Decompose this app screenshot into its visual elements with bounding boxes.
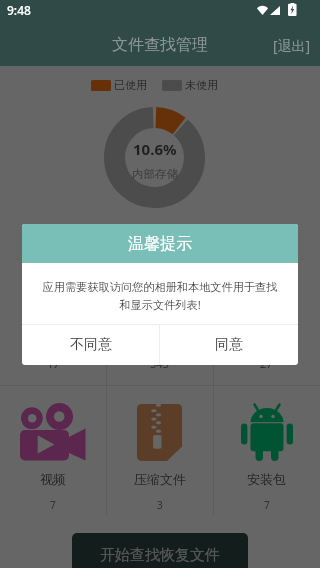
staticText: 9:48 [7,2,31,18]
staticText: 压缩文件 [134,471,186,487]
button[interactable]: 不同意 [22,325,159,365]
other: Videos [20,403,86,461]
staticText: 27 [260,356,273,371]
staticText: 未使用 [185,78,218,92]
staticText: 同意 [215,336,243,354]
staticText: 7 [50,498,56,512]
button[interactable]: [退出] [257,25,320,64]
staticText: 文件查找管理 [112,35,208,55]
button[interactable]: Installers [213,386,320,516]
button[interactable]: 同意 [160,325,298,365]
staticText: [退出] [273,36,311,55]
staticText: 已使用 [114,78,147,92]
staticText: 10.6% [133,139,177,159]
staticText: 视频 [40,471,66,487]
staticText: 17 [47,356,60,371]
button[interactable]: Videos [0,386,106,516]
staticText: 7 [264,498,270,512]
button[interactable]: Archives [106,386,213,516]
staticText: 开始查找恢复文件 [100,546,220,565]
staticText: 内部存储 [132,167,178,181]
staticText: 应用需要获取访问您的相册和本地文件用于查找和显示文件列表! [41,280,279,312]
other: Archives [137,404,182,461]
staticText: 3 [157,498,163,512]
button[interactable]: 开始查找恢复文件 [72,533,248,568]
staticText: 安装包 [247,471,286,487]
staticText: 不同意 [70,336,112,354]
other: Installers [241,403,293,461]
staticText: 温馨提示 [128,234,192,254]
staticText: 545 [150,356,169,371]
